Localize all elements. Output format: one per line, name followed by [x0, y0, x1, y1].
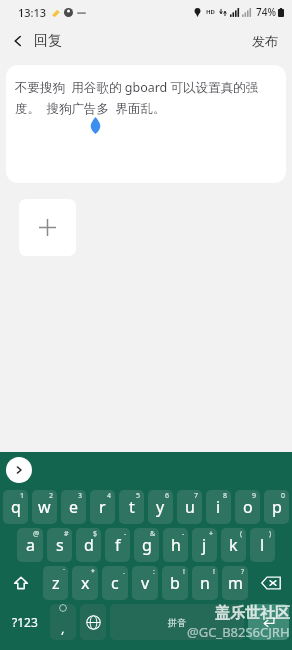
button[interactable]: r [90, 490, 115, 524]
staticText: z [52, 572, 60, 594]
staticText: i [216, 496, 221, 518]
staticText: 拼音 [168, 617, 186, 628]
button[interactable]: v [132, 566, 158, 600]
staticText: $ [93, 529, 98, 539]
staticText: 2 [49, 491, 54, 501]
button[interactable]: 发布 [238, 27, 292, 55]
button[interactable]: a [17, 528, 43, 562]
staticText: v [141, 572, 150, 594]
staticText: m [228, 572, 243, 594]
staticText: 7 [194, 491, 199, 501]
staticText: 8 [223, 491, 228, 501]
staticText: p [272, 496, 282, 518]
staticText: , [61, 619, 65, 637]
staticText: r [99, 496, 106, 518]
staticText: : [153, 567, 155, 577]
button[interactable]: p [264, 490, 289, 524]
button[interactable]: f [105, 528, 130, 562]
button[interactable]: d [76, 528, 101, 562]
staticText: n [200, 572, 210, 594]
button[interactable]: u [177, 490, 202, 524]
staticText: + [209, 529, 214, 539]
staticText: s [56, 534, 64, 556]
staticText: 74% [256, 5, 276, 19]
staticText: ( [240, 529, 243, 539]
other: Back [11, 34, 25, 48]
staticText: f [115, 534, 121, 556]
button[interactable]: g [134, 528, 159, 562]
staticText: . [123, 567, 125, 577]
staticText: 13:13 [18, 5, 47, 20]
staticText: ! [213, 567, 215, 577]
staticText: q [11, 496, 21, 518]
button[interactable]: z [43, 566, 68, 600]
staticText: g [142, 534, 152, 556]
button[interactable]: Add image [19, 199, 76, 256]
staticText: b [170, 572, 180, 594]
staticText: ?123 [12, 614, 38, 630]
staticText: ! [183, 567, 185, 577]
staticText: 回复 [34, 32, 62, 50]
button[interactable]: c [102, 566, 128, 600]
staticText: - [182, 529, 185, 539]
button[interactable]: w [32, 490, 57, 524]
staticText: 9 [252, 491, 257, 501]
button[interactable]: l [250, 528, 275, 562]
staticText: 5 [136, 491, 141, 501]
staticText: # [64, 529, 69, 539]
button[interactable]: y [148, 490, 173, 524]
button[interactable]: 拼音 [110, 604, 244, 640]
staticText: d [84, 534, 94, 556]
button[interactable]: m [222, 566, 248, 600]
button[interactable]: s [47, 528, 72, 562]
button[interactable]: Enter [248, 604, 289, 640]
button[interactable]: e [61, 490, 86, 524]
staticText: 3 [78, 491, 83, 501]
staticText: k [229, 534, 238, 556]
staticText: y [156, 496, 165, 518]
button[interactable]: i [206, 490, 231, 524]
staticText: ? [241, 567, 245, 577]
staticText: 6 [165, 491, 170, 501]
button[interactable]: ?123 [3, 604, 46, 640]
button[interactable]: 不要搜狗 用谷歌的 gboard 可以设置真的强度。 搜狗广告多 界面乱。 [6, 65, 286, 183]
staticText: @ [33, 529, 40, 539]
staticText: HD [206, 8, 215, 16]
button[interactable]: Expand toolbar [6, 457, 32, 483]
staticText: a [26, 534, 35, 556]
button[interactable]: Shift [1, 566, 41, 600]
staticText: * [91, 567, 95, 577]
button[interactable]: j [192, 528, 217, 562]
staticText: 1 [20, 491, 25, 501]
staticText: 0 [281, 491, 286, 501]
staticText: t [129, 496, 135, 518]
button[interactable]: h [163, 528, 188, 562]
button[interactable]: k [221, 528, 246, 562]
button[interactable]: q [3, 490, 28, 524]
staticText: ) [269, 529, 272, 539]
button[interactable]: Backspace [250, 566, 291, 600]
staticText: u [185, 496, 195, 518]
button[interactable]: Change language [80, 604, 106, 640]
button[interactable]: b [162, 566, 188, 600]
staticText: - [124, 529, 127, 539]
button[interactable]: Back [0, 28, 70, 54]
staticText: ` [63, 567, 65, 577]
staticText: 盖乐世社区 [215, 604, 290, 623]
staticText: & [150, 529, 156, 539]
staticText: x [81, 572, 90, 594]
staticText: l [260, 534, 265, 556]
staticText: w [38, 496, 51, 518]
staticText: @GC_B82S6CJRH [187, 623, 290, 641]
staticText: 发布 [252, 33, 278, 49]
button[interactable]: t [119, 490, 144, 524]
button[interactable]: Emoji and comma [50, 604, 76, 640]
button[interactable]: x [72, 566, 98, 600]
staticText: o [243, 496, 253, 518]
staticText: h [171, 534, 181, 556]
staticText: e [69, 496, 79, 518]
staticText: 不要搜狗 用谷歌的 gboard 可以设置真的强度。 搜狗广告多 界面乱。 [15, 79, 277, 116]
button[interactable]: o [235, 490, 260, 524]
button[interactable]: n [192, 566, 218, 600]
staticText: 4 [107, 491, 112, 501]
